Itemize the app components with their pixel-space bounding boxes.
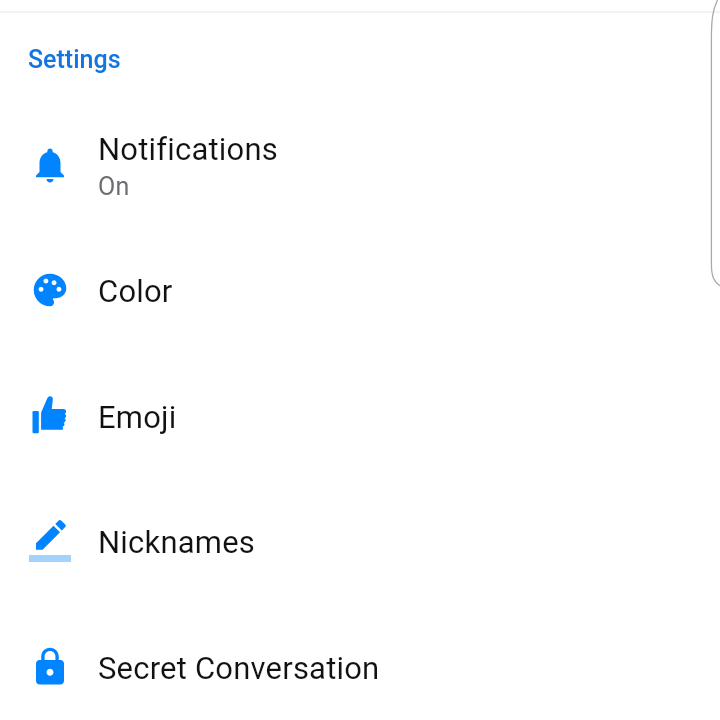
- staticText: Color: [98, 273, 173, 309]
- staticText: Secret Conversation: [98, 650, 380, 686]
- button[interactable]: Secret Conversation: [0, 604, 720, 720]
- staticText: Nicknames: [98, 524, 255, 560]
- other: Notifications: [29, 144, 71, 186]
- other: Emoji: [29, 395, 71, 437]
- button[interactable]: Notifications: [0, 102, 720, 227]
- staticText: Settings: [28, 45, 121, 74]
- button[interactable]: Nicknames: [0, 478, 720, 603]
- other: Secret Conversation: [29, 646, 71, 688]
- staticText: Notifications: [98, 131, 278, 167]
- button[interactable]: Emoji: [0, 353, 720, 478]
- other: Nicknames: [29, 520, 71, 562]
- staticText: Emoji: [98, 399, 177, 435]
- button[interactable]: Color: [0, 227, 720, 352]
- other: Color: [29, 269, 71, 311]
- staticText: On: [98, 172, 130, 201]
